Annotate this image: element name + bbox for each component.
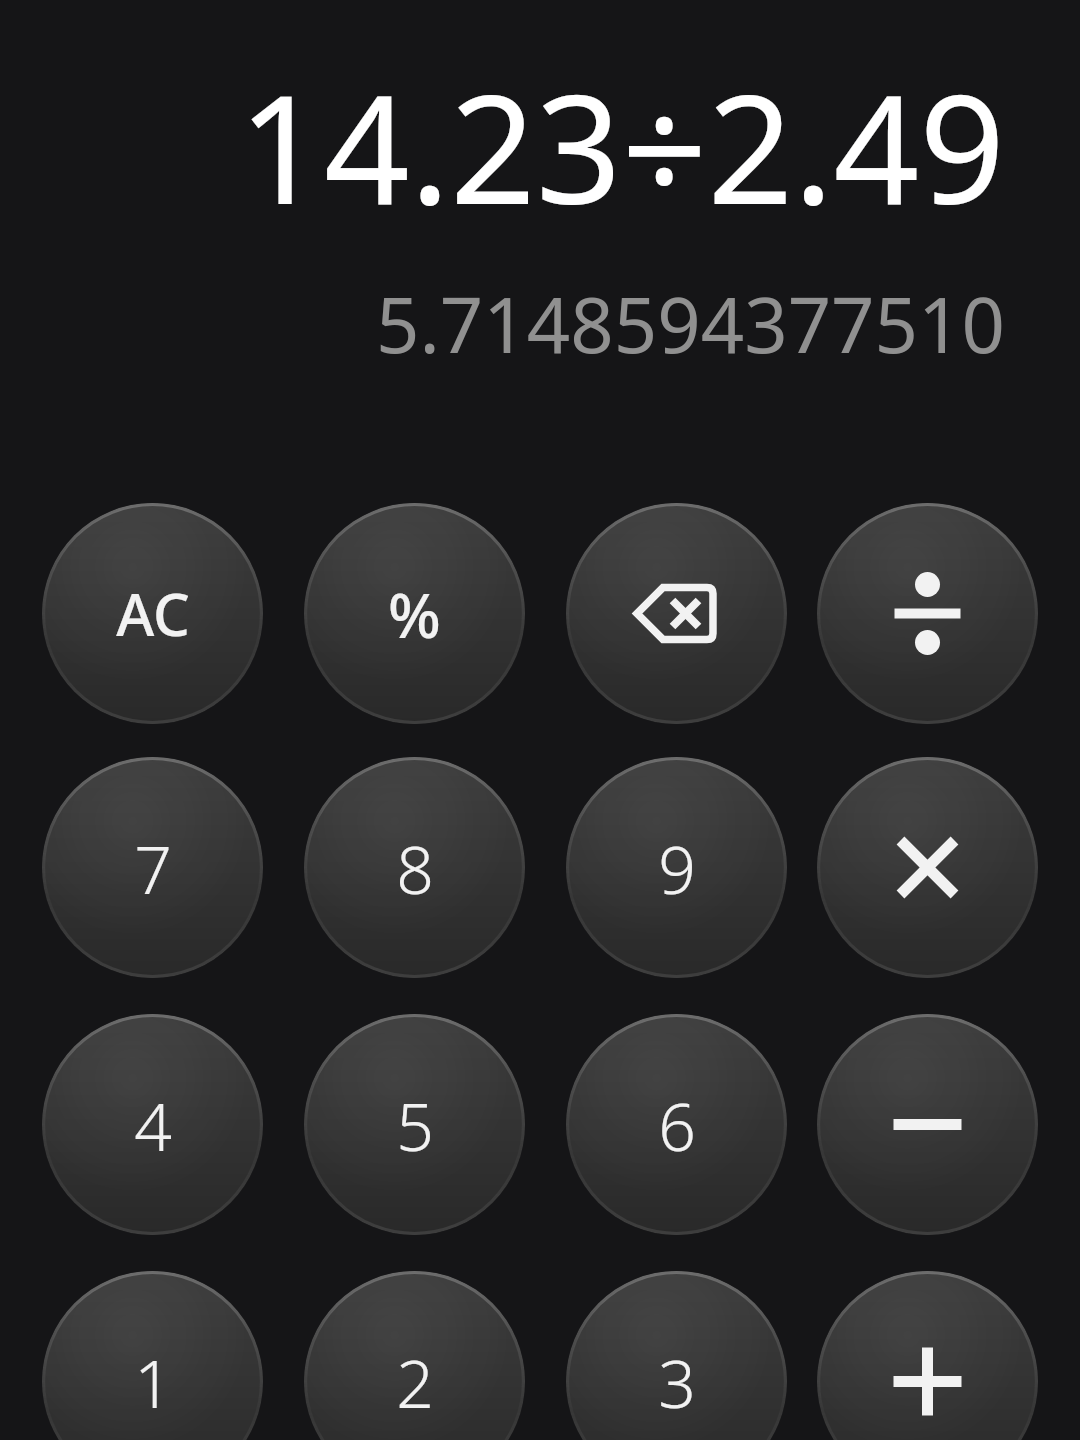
button[interactable]: AC: [42, 503, 263, 724]
staticText: %: [388, 572, 441, 656]
staticText: 1: [134, 1337, 172, 1427]
staticText: AC: [116, 574, 190, 653]
button[interactable]: Add: [817, 1271, 1038, 1440]
button[interactable]: 1: [42, 1271, 263, 1440]
button[interactable]: 5: [304, 1014, 525, 1235]
button[interactable]: 8: [304, 757, 525, 978]
button[interactable]: %: [304, 503, 525, 724]
button[interactable]: 6: [566, 1014, 787, 1235]
button[interactable]: 4: [42, 1014, 263, 1235]
staticText: 6: [658, 1080, 696, 1170]
button[interactable]: 3: [566, 1271, 787, 1440]
staticText: 2: [396, 1337, 434, 1427]
button[interactable]: 9: [566, 757, 787, 978]
button[interactable]: 7: [42, 757, 263, 978]
staticText: 7: [134, 823, 172, 913]
button[interactable]: 2: [304, 1271, 525, 1440]
staticText: 4: [134, 1080, 172, 1170]
staticText: 5: [396, 1080, 434, 1170]
button[interactable]: Backspace: [566, 503, 787, 724]
staticText: 14.23÷2.49: [40, 44, 1005, 248]
button[interactable]: Multiply: [817, 757, 1038, 978]
button[interactable]: Subtract: [817, 1014, 1038, 1235]
button[interactable]: Divide: [817, 503, 1038, 724]
staticText: 9: [658, 823, 696, 913]
staticText: 8: [396, 823, 434, 913]
staticText: 3: [658, 1337, 696, 1427]
staticText: 5.7148594377510: [40, 272, 1005, 376]
